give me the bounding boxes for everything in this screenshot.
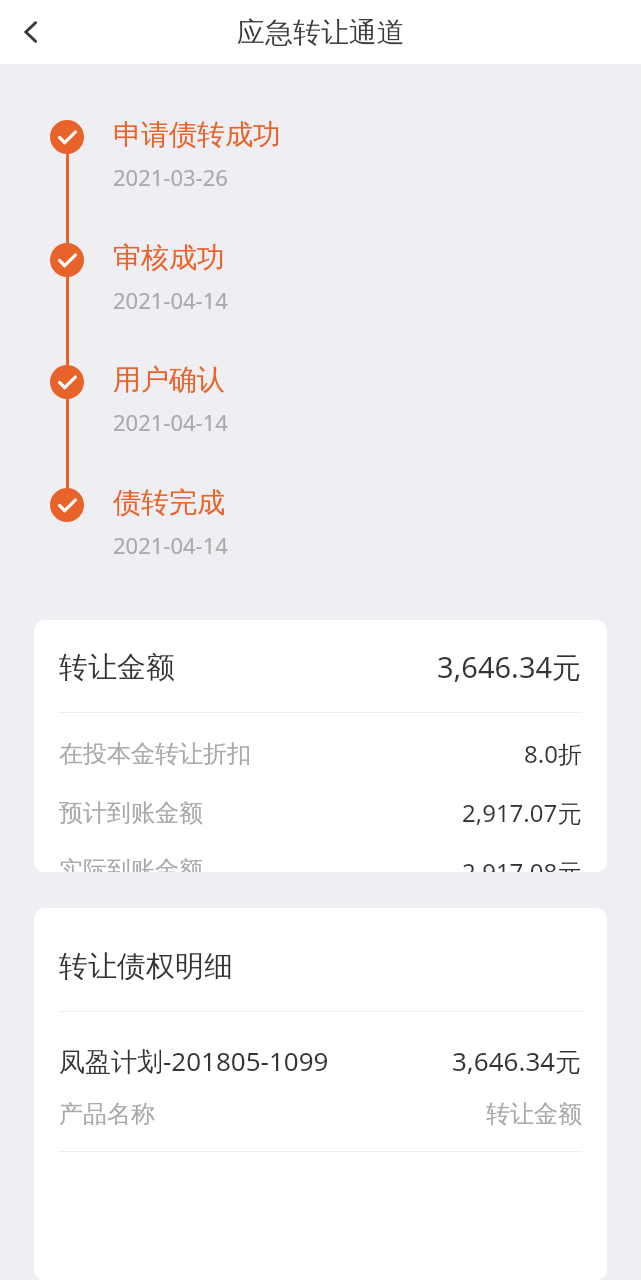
staticText: 预计到账金额 xyxy=(59,798,203,828)
staticText: 用户确认 xyxy=(113,362,225,397)
button[interactable]: 转让债权明细 xyxy=(34,908,607,1280)
staticText: 在投本金转让折扣 xyxy=(59,739,251,769)
staticText: 2,917.08元 xyxy=(462,855,582,872)
staticText: 凤盈计划-201805-1099 xyxy=(59,1043,329,1079)
button[interactable]: Back xyxy=(0,1,62,63)
staticText: 2021-04-14 xyxy=(113,285,228,315)
staticText: 8.0折 xyxy=(524,737,582,770)
staticText: 产品名称 xyxy=(59,1099,155,1129)
staticText: 3,646.34元 xyxy=(452,1043,582,1079)
staticText: 转让金额 xyxy=(59,649,175,686)
staticText: 2021-03-26 xyxy=(113,162,228,192)
staticText: 审核成功 xyxy=(113,240,225,275)
staticText: 2021-04-14 xyxy=(113,530,228,560)
button[interactable]: Completed step xyxy=(50,488,84,522)
button[interactable]: Completed step xyxy=(50,243,84,277)
staticText: 债转完成 xyxy=(113,485,225,520)
staticText: 应急转让通道 xyxy=(237,15,405,50)
button[interactable]: Completed step xyxy=(50,365,84,399)
staticText: 实际到账金额 xyxy=(59,855,203,872)
staticText: 申请债转成功 xyxy=(113,117,281,152)
button[interactable]: Completed step xyxy=(50,120,84,154)
staticText: 2021-04-14 xyxy=(113,407,228,437)
staticText: 转让金额 xyxy=(486,1099,582,1129)
staticText: 2,917.07元 xyxy=(462,796,582,829)
button[interactable]: 转让金额 xyxy=(34,620,607,872)
staticText: 3,646.34元 xyxy=(437,647,582,687)
staticText: 转让债权明细 xyxy=(59,948,233,985)
